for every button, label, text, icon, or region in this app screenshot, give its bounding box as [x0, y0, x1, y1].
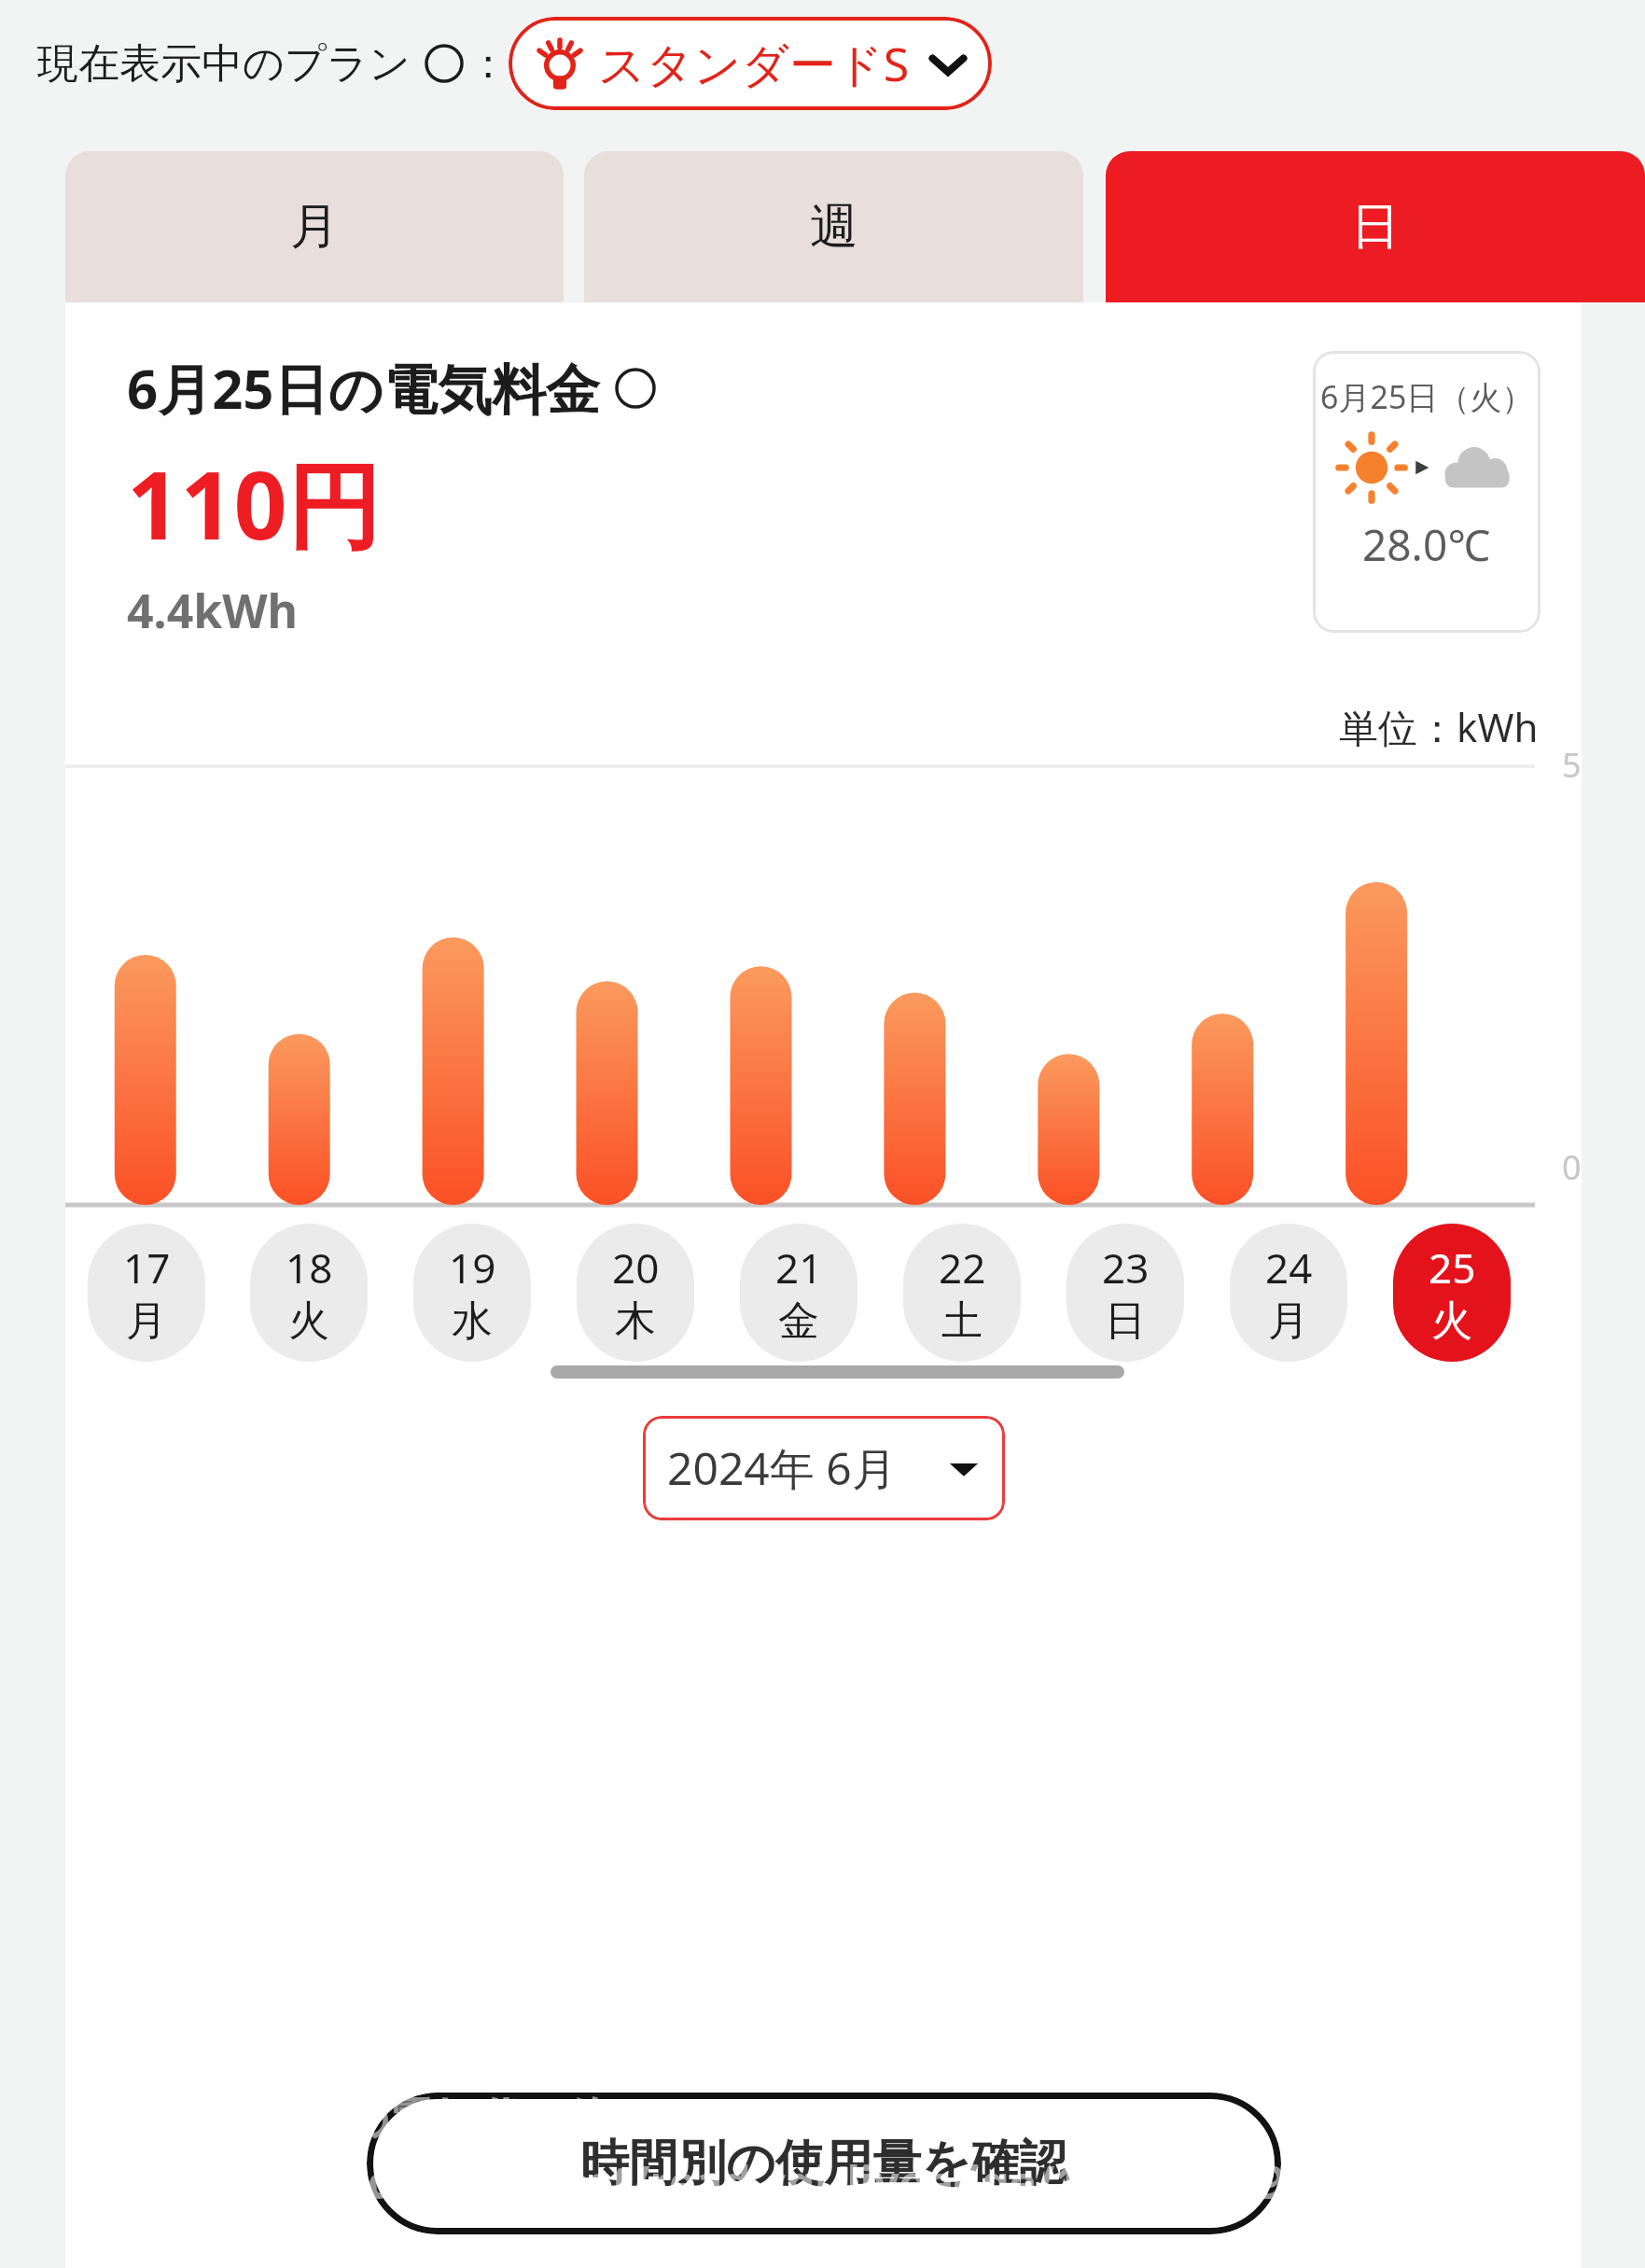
staticText: 月	[290, 196, 339, 258]
button[interactable]: 週	[584, 151, 1083, 302]
button[interactable]: 25	[1393, 1224, 1511, 1362]
button[interactable]: 23	[1066, 1224, 1184, 1362]
other: 料金について	[615, 368, 656, 409]
staticText: 日	[1105, 1295, 1146, 1347]
staticText: 月	[126, 1295, 167, 1347]
other: ヘルプ	[425, 44, 464, 83]
staticText: 金	[778, 1295, 819, 1347]
staticText: 2024年 6月	[667, 1437, 897, 1499]
button[interactable]: 月	[65, 151, 564, 302]
staticText: 単位：kWh	[1339, 700, 1539, 753]
button[interactable]: 日	[1106, 151, 1645, 302]
staticText: 4.4kWh	[127, 579, 299, 642]
button[interactable]: スタンダードS	[509, 17, 992, 110]
staticText: 月	[1268, 1295, 1309, 1347]
staticText: 木	[615, 1295, 656, 1347]
button[interactable]: 6月25日（火）	[1313, 351, 1540, 633]
staticText: 【悲報】今月の電気代、終わる	[75, 2092, 705, 2148]
staticText: 28.0℃	[1362, 515, 1491, 574]
staticText: 0	[1562, 1144, 1582, 1190]
staticText: 25	[1429, 1239, 1476, 1295]
staticText: 現在表示中のプラン	[37, 38, 411, 90]
button[interactable]: 17	[88, 1224, 205, 1362]
staticText: 18	[286, 1239, 333, 1295]
staticText: 24	[1265, 1239, 1313, 1295]
button[interactable]: 21	[740, 1224, 857, 1362]
staticText: 6月25日（火）	[1320, 375, 1534, 418]
staticText: 21	[775, 1239, 823, 1295]
button[interactable]: 20	[577, 1224, 694, 1362]
staticText: 時間別の使用量を確認	[580, 2133, 1068, 2194]
button[interactable]: 22	[903, 1224, 1021, 1362]
staticText: スタンダードS	[598, 32, 910, 95]
staticText: 19	[449, 1239, 496, 1295]
staticText: 6月25日の電気料金	[127, 351, 600, 425]
staticText: 17	[123, 1239, 171, 1295]
staticText: 日	[1351, 196, 1400, 258]
staticText: ：	[467, 38, 509, 90]
staticText: 火	[288, 1295, 329, 1347]
staticText: 23	[1102, 1239, 1150, 1295]
staticText: 土	[941, 1295, 983, 1347]
staticText: 110円	[127, 440, 381, 567]
staticText: 22	[939, 1239, 986, 1295]
button[interactable]: 24	[1230, 1224, 1347, 1362]
button[interactable]: 19	[413, 1224, 531, 1362]
staticText: 5	[1562, 742, 1582, 788]
staticText: 20	[612, 1239, 660, 1295]
staticText: http://bbs.eddibb.cc/test/read.cgi/livee…	[75, 2151, 1330, 2212]
staticText: 火	[1431, 1295, 1472, 1347]
staticText: 週	[810, 196, 858, 258]
button[interactable]: 2024年 6月	[643, 1416, 1005, 1520]
button[interactable]: 時間別の使用量を確認	[367, 2093, 1281, 2234]
staticText: 水	[452, 1295, 493, 1347]
button[interactable]: 18	[250, 1224, 368, 1362]
